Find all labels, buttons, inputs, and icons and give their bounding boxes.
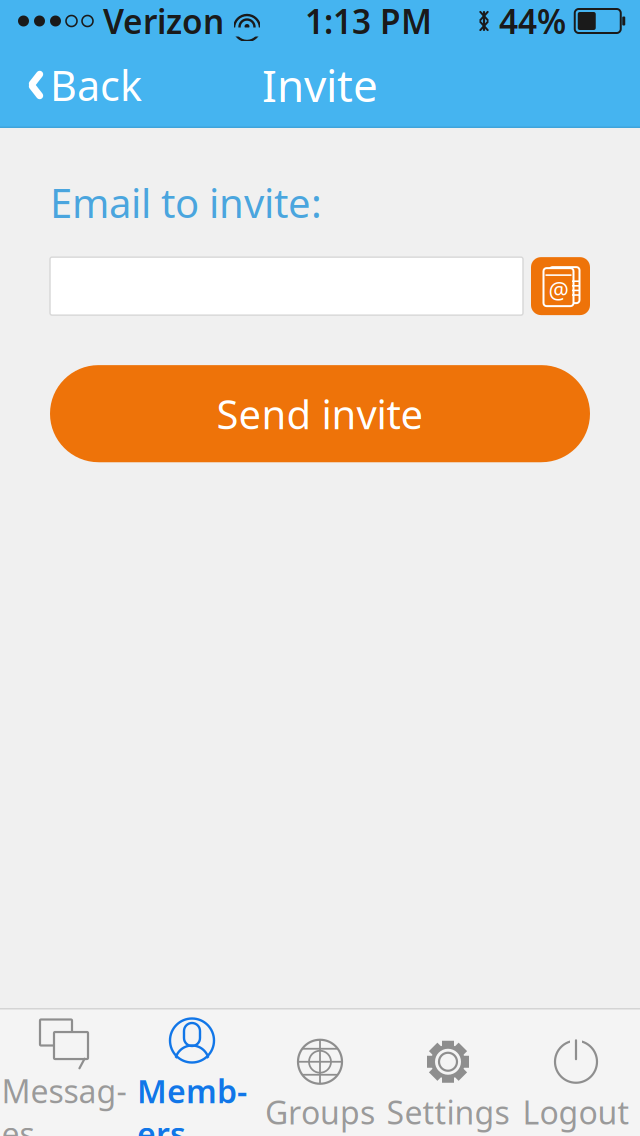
staticText: @ <box>548 275 568 305</box>
button[interactable]: Members <box>128 1009 256 1136</box>
button[interactable]: Send invite <box>50 365 590 462</box>
button[interactable]: Settings <box>384 1031 512 1136</box>
button[interactable]: Logout <box>512 1031 640 1136</box>
staticText: Email to invite: <box>50 176 322 229</box>
staticText: 44% <box>499 0 566 43</box>
staticText: Groups <box>265 1091 375 1133</box>
staticText: Messages <box>1 1069 126 1136</box>
button[interactable]: Messages <box>0 1009 128 1136</box>
staticText: Members <box>137 1069 247 1136</box>
staticText: 1:13 PM <box>305 0 432 43</box>
staticText: Invite <box>262 56 378 114</box>
button[interactable]: Back <box>0 46 158 124</box>
staticText: Verizon <box>103 0 224 43</box>
staticText: Back <box>50 58 142 112</box>
staticText: Logout <box>522 1091 629 1133</box>
staticText: Settings <box>386 1091 509 1133</box>
button[interactable]: Groups <box>256 1031 384 1136</box>
staticText: Send invite <box>216 387 423 440</box>
button[interactable]: Choose from contacts <box>531 257 590 315</box>
